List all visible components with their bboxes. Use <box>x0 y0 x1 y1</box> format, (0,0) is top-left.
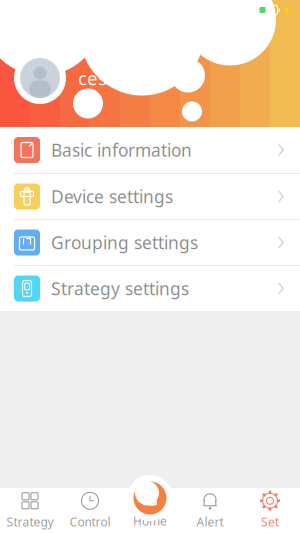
staticText: ceshi <box>78 66 124 90</box>
button[interactable]: Home <box>127 475 173 521</box>
button[interactable]: Alert <box>180 488 240 533</box>
staticText: Grouping settings <box>51 231 198 254</box>
button[interactable]: Strategy <box>0 488 60 533</box>
staticText: ⚡ <box>281 4 294 16</box>
staticText: Control <box>69 514 110 530</box>
button[interactable]: Strategy settings <box>0 265 300 311</box>
button[interactable]: Control <box>60 488 120 533</box>
staticText: Strategy <box>6 514 53 530</box>
staticText: Basic information <box>51 138 192 161</box>
staticText: Strategy settings <box>51 277 189 300</box>
button[interactable]: Set <box>240 488 300 533</box>
button[interactable]: Grouping settings <box>0 219 300 265</box>
staticText: Device settings <box>51 185 173 208</box>
staticText: Alert <box>196 514 223 530</box>
button[interactable]: Device settings <box>0 173 300 219</box>
staticText: Home <box>133 513 167 529</box>
button[interactable]: Basic information <box>0 127 300 173</box>
staticText: Set <box>261 514 279 530</box>
